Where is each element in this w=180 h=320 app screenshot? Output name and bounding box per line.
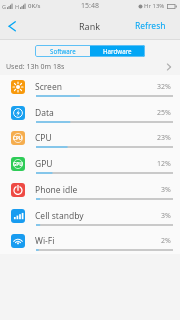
staticText: Rank [79, 20, 101, 32]
button[interactable]: Software [35, 45, 90, 57]
staticText: GPU [13, 161, 23, 167]
staticText: 0K/s [28, 2, 41, 10]
staticText: CPU [13, 135, 23, 141]
staticText: Phone idle [35, 184, 78, 196]
staticText: 15:48 [81, 1, 99, 11]
staticText: G [2, 3, 7, 10]
staticText: Screen [35, 81, 62, 93]
staticText: Data [35, 107, 54, 119]
staticText: 12% [157, 159, 171, 169]
staticText: 3% [161, 185, 171, 195]
button[interactable]: Wi-Fi [0, 229, 180, 255]
staticText: Software [50, 47, 76, 55]
staticText: Hr 13% [144, 2, 165, 10]
button[interactable]: Screen [0, 75, 180, 101]
staticText: 25% [157, 108, 171, 118]
button[interactable]: Back [2, 16, 22, 36]
button[interactable]: GPU [0, 152, 180, 178]
button[interactable]: Cell standby [0, 204, 180, 230]
staticText: H [15, 3, 20, 10]
staticText: GPU [35, 158, 53, 170]
staticText: CPU [35, 132, 52, 144]
staticText: 2% [161, 236, 171, 246]
button[interactable]: Refresh [128, 15, 180, 37]
staticText: Wi-Fi [35, 235, 55, 247]
button[interactable]: Hardware [90, 45, 145, 57]
button[interactable]: Phone idle [0, 178, 180, 204]
button[interactable]: Data [0, 101, 180, 127]
staticText: Used: 13h 0m 18s [6, 62, 65, 72]
button[interactable]: Used: 13h 0m 18s [0, 58, 180, 75]
staticText: Hardware [103, 47, 132, 55]
staticText: Refresh [135, 20, 166, 32]
staticText: 3% [161, 211, 171, 221]
staticText: 23% [157, 133, 171, 143]
staticText: 32% [157, 82, 171, 92]
staticText: Cell standby [35, 210, 84, 222]
button[interactable]: CPU [0, 126, 180, 152]
